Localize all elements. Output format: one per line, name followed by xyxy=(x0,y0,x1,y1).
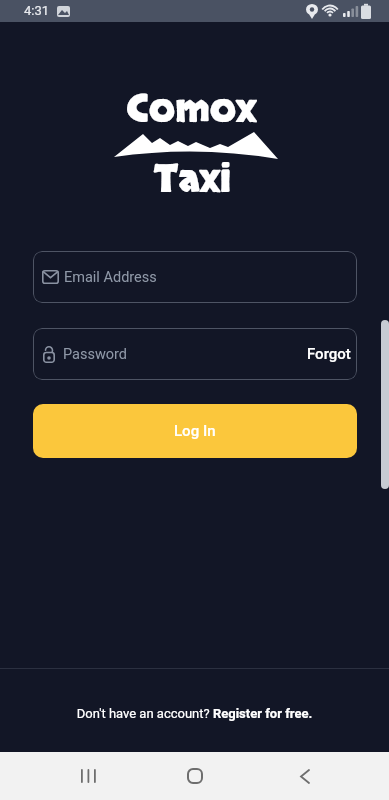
button[interactable]: Log In xyxy=(33,404,357,458)
button[interactable] xyxy=(171,752,219,800)
button[interactable]: Email Address xyxy=(33,251,357,303)
button[interactable] xyxy=(281,752,329,800)
button[interactable]: Password xyxy=(33,328,357,380)
button[interactable] xyxy=(64,752,112,800)
staticText: Comox xyxy=(0,84,386,136)
button[interactable]: Don't have an account? Register for free… xyxy=(0,706,389,721)
staticText: Log In xyxy=(174,422,216,440)
staticText: Password xyxy=(63,346,128,363)
staticText: 4:31 xyxy=(24,3,50,18)
staticText: Taxi xyxy=(0,154,387,206)
button[interactable]: Forgot xyxy=(307,345,357,363)
staticText: Email Address xyxy=(64,269,157,286)
